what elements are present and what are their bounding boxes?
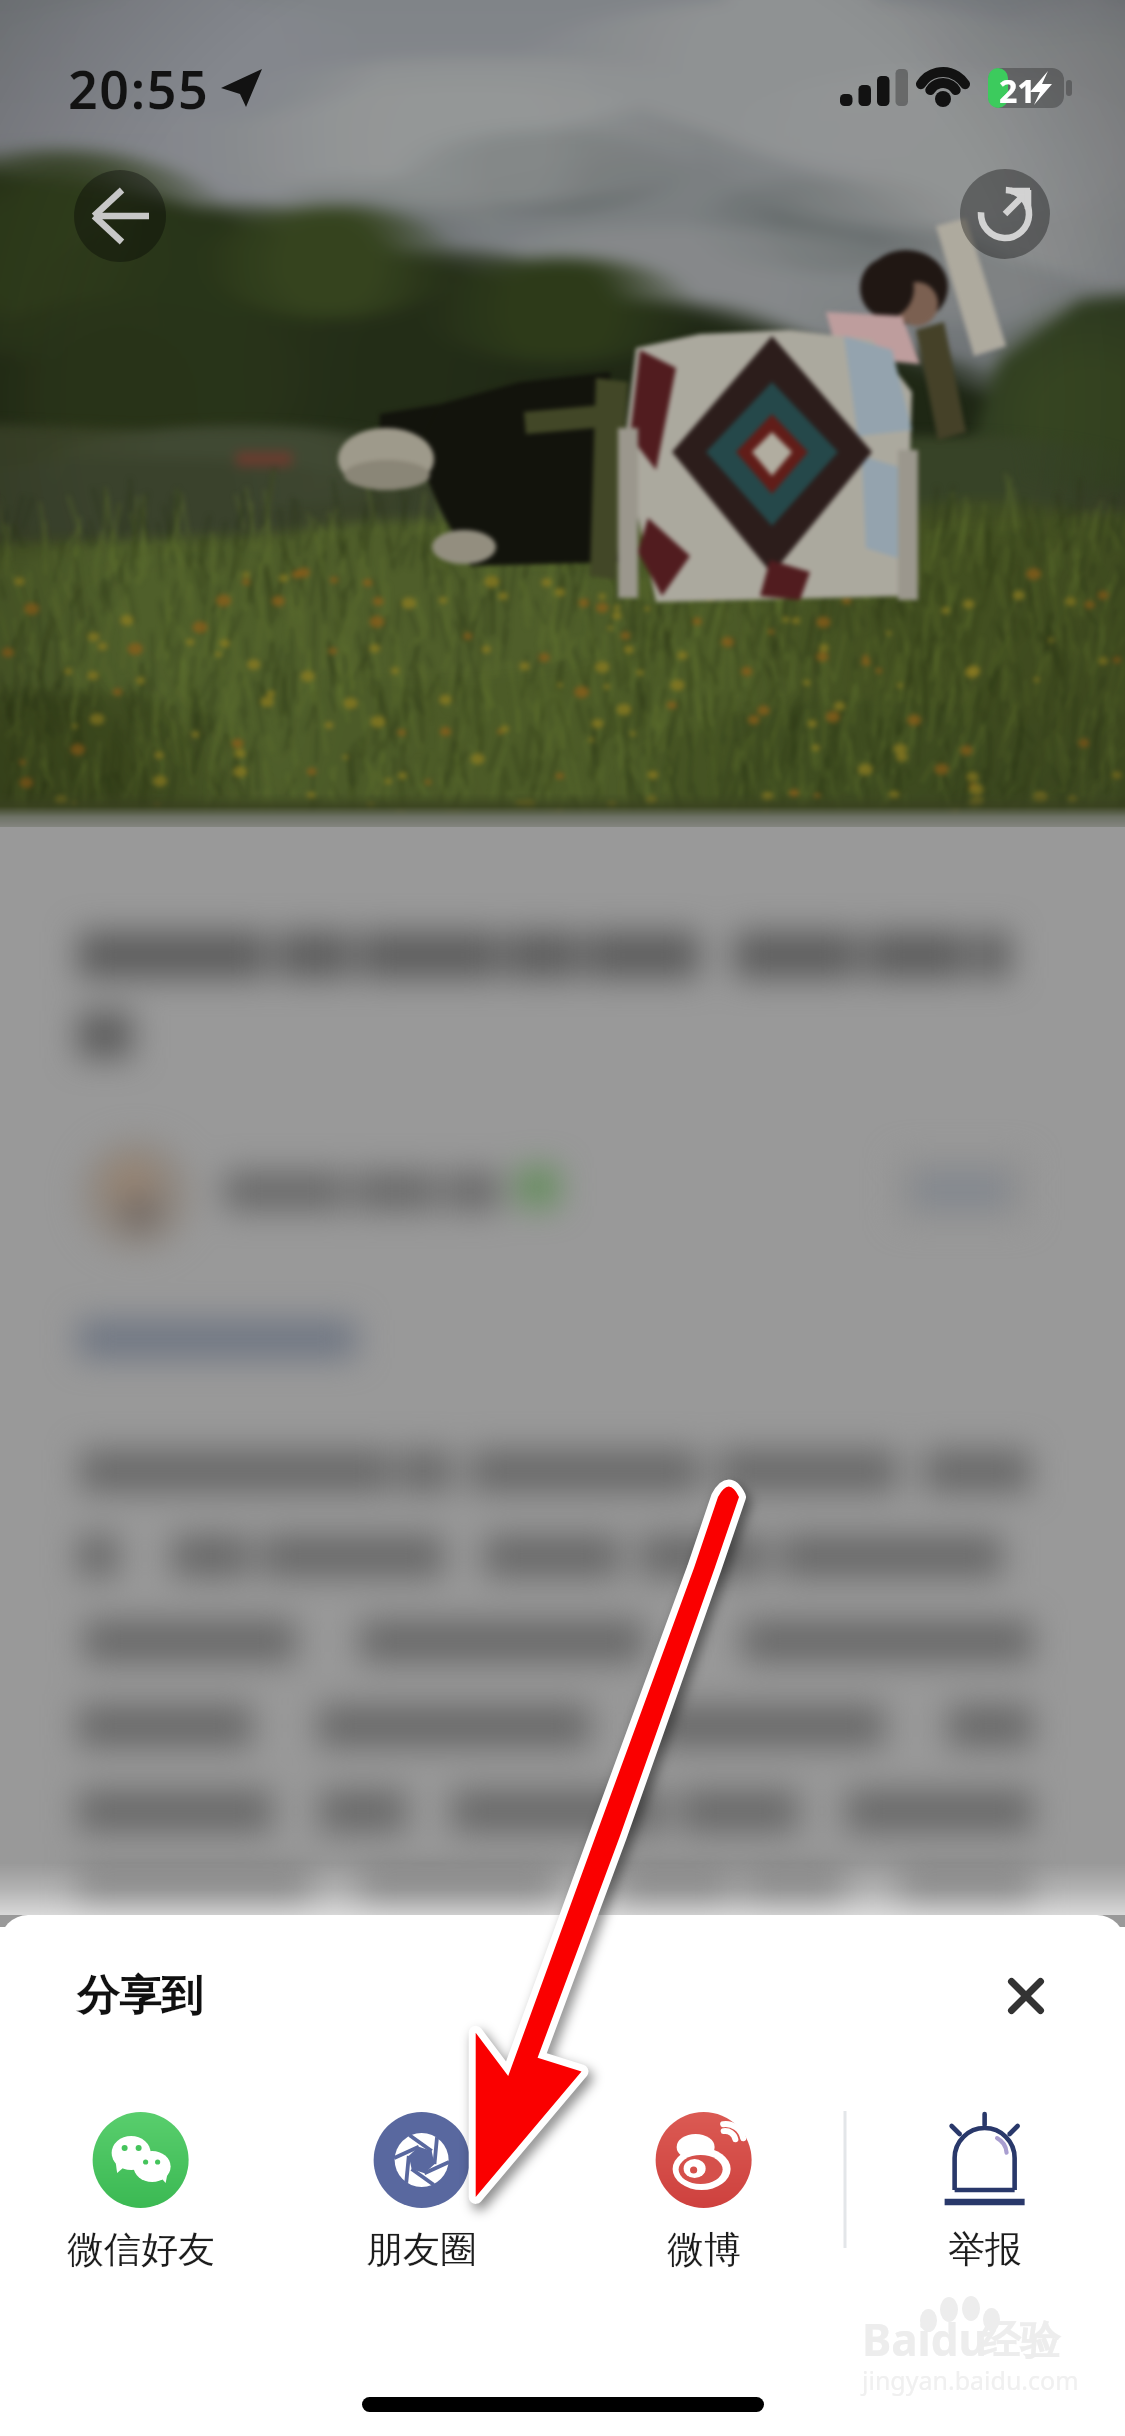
staticText: jingyan.baidu.com <box>862 2363 1079 2397</box>
staticText: 微信好友 <box>67 2226 215 2273</box>
staticText: 举报 <box>948 2226 1022 2273</box>
staticText: 分享到 <box>77 1970 203 2023</box>
button[interactable]: 朋友圈 <box>281 2085 562 2285</box>
button[interactable]: 微博 <box>563 2085 844 2285</box>
staticText: 朋友圈 <box>366 2226 477 2273</box>
staticText: Baidu <box>862 2309 988 2369</box>
button[interactable]: Open in browser <box>960 169 1050 259</box>
button[interactable]: 微信好友 <box>0 2085 281 2285</box>
staticText: 21 <box>999 69 1036 113</box>
button[interactable]: Back <box>74 170 166 262</box>
button[interactable]: Close <box>968 1938 1084 2054</box>
staticText: 20:55 <box>68 53 210 124</box>
button[interactable]: 举报 <box>844 2085 1125 2285</box>
staticText: 微博 <box>667 2226 741 2273</box>
staticText: 经验 <box>980 2315 1060 2365</box>
